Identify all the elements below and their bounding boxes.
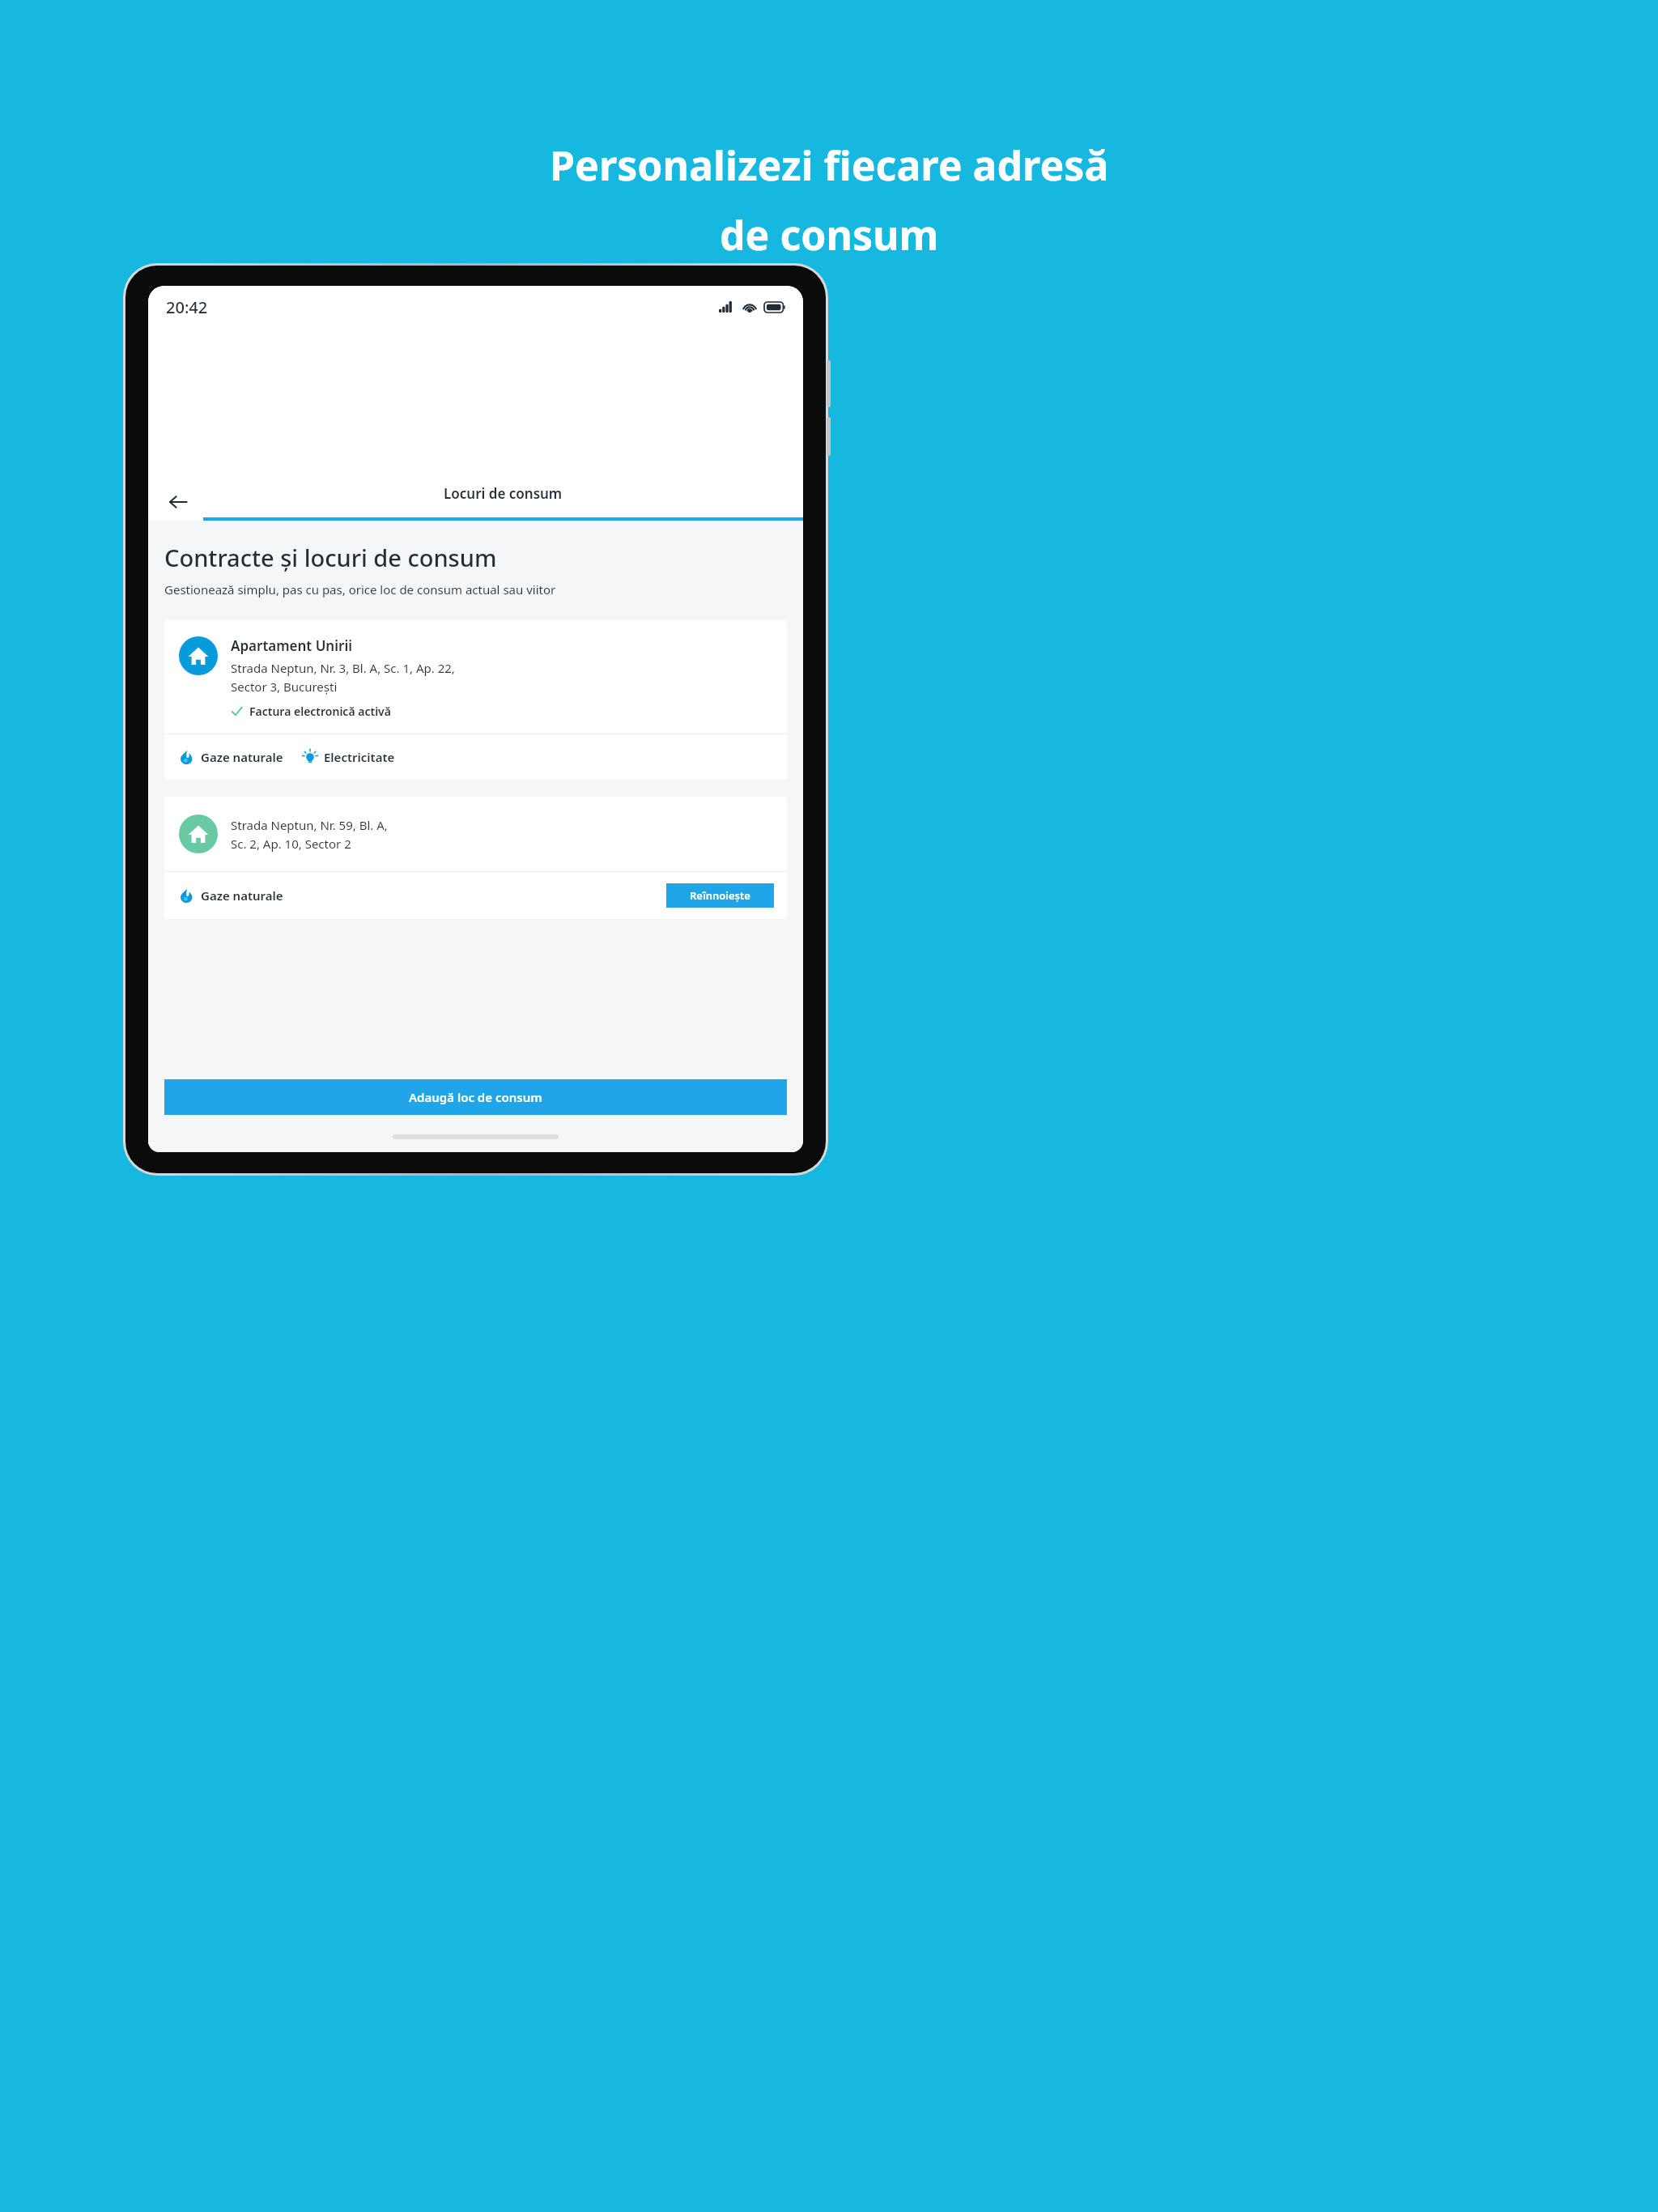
staticText: Strada Neptun, Nr. 3, Bl. A, Sc. 1, Ap. …: [231, 660, 455, 676]
staticText: de consum: [720, 207, 939, 262]
staticText: Factura electronică activă: [249, 704, 391, 719]
button[interactable]: Strada Neptun, Nr. 59, Bl. A,: [164, 797, 787, 919]
staticText: 20:42: [166, 296, 208, 318]
staticText: Contracte și locuri de consum: [164, 542, 497, 573]
button[interactable]: Reînnoiește: [666, 883, 774, 908]
staticText: Sc. 2, Ap. 10, Sector 2: [231, 836, 351, 852]
staticText: Strada Neptun, Nr. 59, Bl. A,: [231, 817, 388, 833]
staticText: Apartament Unirii: [231, 636, 353, 655]
staticText: Personalizezi fiecare adresă: [550, 138, 1109, 193]
button[interactable]: Locuri de consum: [203, 479, 803, 521]
staticText: Gaze naturale: [201, 887, 283, 904]
staticText: Reînnoiește: [690, 888, 750, 903]
staticText: Gestionează simplu, pas cu pas, orice lo…: [164, 581, 556, 598]
staticText: Sector 3, București: [231, 678, 338, 695]
staticText: Gaze naturale: [201, 749, 283, 765]
staticText: Electricitate: [324, 749, 395, 765]
staticText: Locuri de consum: [444, 484, 563, 503]
staticText: Adaugă loc de consum: [409, 1089, 542, 1105]
button[interactable]: Back: [159, 483, 197, 521]
button[interactable]: Apartament Unirii: [164, 620, 787, 780]
button[interactable]: Adaugă loc de consum: [164, 1079, 787, 1115]
